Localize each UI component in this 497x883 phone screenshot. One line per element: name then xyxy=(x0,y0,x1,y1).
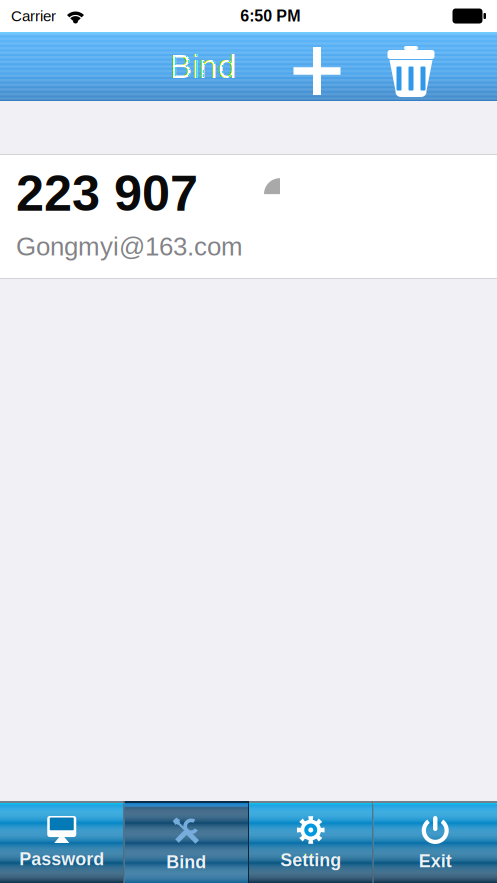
staticText: 223 907 xyxy=(16,165,198,221)
staticText: Setting xyxy=(280,850,341,870)
button[interactable]: 223 907 xyxy=(0,155,497,278)
staticText: Bind xyxy=(170,48,237,85)
button[interactable]: Bind xyxy=(124,801,248,883)
button[interactable]: Add xyxy=(286,32,348,101)
staticText: 6:50 PM xyxy=(240,7,300,25)
staticText: Password xyxy=(19,849,104,869)
button[interactable]: Setting xyxy=(249,801,372,883)
staticText: Carrier xyxy=(11,8,56,24)
button[interactable]: Delete xyxy=(380,32,442,101)
staticText: Exit xyxy=(419,851,452,871)
staticText: Gongmyi@163.com xyxy=(16,232,243,261)
button[interactable]: Exit xyxy=(373,801,497,883)
staticText: Bind xyxy=(166,852,206,872)
button[interactable]: Password xyxy=(0,801,123,883)
button[interactable]: Bind xyxy=(170,48,250,85)
